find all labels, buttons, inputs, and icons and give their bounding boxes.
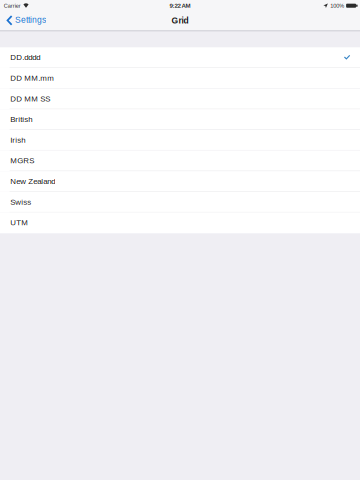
staticText: Grid bbox=[171, 16, 188, 25]
button[interactable]: UTM bbox=[0, 212, 360, 233]
button[interactable]: New Zealand bbox=[0, 171, 360, 192]
staticText: Carrier bbox=[4, 3, 21, 9]
staticText: British bbox=[10, 115, 32, 124]
button[interactable]: Swiss bbox=[0, 192, 360, 212]
staticText: Settings bbox=[15, 15, 46, 24]
staticText: Swiss bbox=[10, 197, 31, 206]
button[interactable]: DD MM SS bbox=[0, 89, 360, 109]
button[interactable]: DD.dddd bbox=[0, 47, 360, 68]
button[interactable]: MGRS bbox=[0, 150, 360, 171]
staticText: Irish bbox=[10, 136, 25, 144]
staticText: UTM bbox=[10, 218, 28, 227]
staticText: DD MM.mm bbox=[10, 74, 54, 82]
staticText: New Zealand bbox=[10, 177, 55, 186]
staticText: MGRS bbox=[10, 156, 34, 165]
button[interactable]: Settings bbox=[0, 13, 50, 30]
staticText: DD.dddd bbox=[10, 53, 40, 62]
staticText: 9:22 AM bbox=[169, 2, 190, 9]
button[interactable]: Irish bbox=[0, 130, 360, 150]
staticText: DD MM SS bbox=[10, 94, 50, 103]
button[interactable]: British bbox=[0, 109, 360, 130]
button[interactable]: DD MM.mm bbox=[0, 68, 360, 88]
staticText: 100% bbox=[330, 3, 344, 9]
